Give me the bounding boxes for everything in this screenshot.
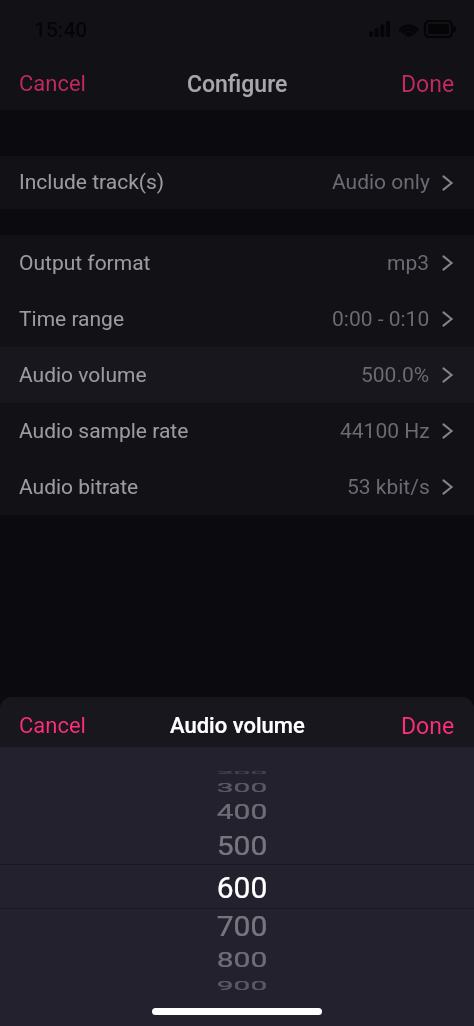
staticText: Time range (19, 307, 125, 332)
staticText: 0:00 - 0:10 (332, 307, 430, 332)
button[interactable]: Audio sample rate (0, 403, 474, 459)
button[interactable]: Cancel (0, 61, 105, 107)
staticText: Include track(s) (19, 170, 165, 195)
staticText: 400 (5, 799, 474, 824)
staticText: Output format (19, 251, 151, 276)
staticText: 500 (5, 830, 474, 861)
staticText: 700 (5, 911, 474, 942)
staticText: 800 (5, 949, 474, 972)
button[interactable]: Done (382, 61, 474, 108)
staticText: 500.0% (361, 363, 430, 388)
staticText: Audio volume (170, 713, 305, 739)
staticText: Audio sample rate (19, 419, 189, 444)
staticText: Audio only (332, 170, 430, 195)
staticText: 200 (5, 770, 474, 775)
button[interactable]: Audio bitrate (0, 459, 474, 515)
staticText: 300 (5, 780, 474, 795)
button[interactable]: Include track(s) (0, 156, 474, 209)
staticText: 15:40 (34, 18, 88, 43)
button[interactable]: Done (382, 703, 474, 750)
staticText: Audio bitrate (19, 475, 139, 500)
button[interactable]: Cancel (0, 703, 105, 749)
staticText: 600 (5, 870, 474, 905)
staticText: 900 (5, 978, 474, 993)
staticText: Cancel (19, 713, 86, 739)
staticText: Done (401, 713, 455, 740)
staticText: 44100 Hz (340, 419, 430, 444)
staticText: mp3 (387, 251, 430, 276)
button[interactable]: Output format (0, 235, 474, 291)
button[interactable]: Time range (0, 291, 474, 347)
staticText: Cancel (19, 71, 86, 97)
staticText: 53 kbit/s (347, 475, 430, 500)
button[interactable]: Audio volume value picker (0, 747, 474, 996)
staticText: Audio volume (19, 363, 147, 388)
button[interactable]: Audio volume (0, 347, 474, 403)
staticText: Configure (187, 71, 288, 98)
staticText: Done (401, 71, 455, 98)
